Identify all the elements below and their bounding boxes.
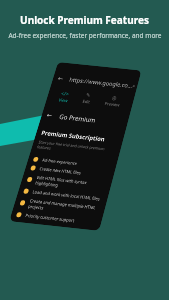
staticText: Ad-free experience, faster performance, … xyxy=(8,31,162,40)
staticText: https://www.google.co... xyxy=(68,75,133,89)
staticText: Preview xyxy=(104,100,121,108)
staticText: Load and work with local HTML files xyxy=(32,189,101,202)
staticText: ← xyxy=(46,111,54,119)
staticText: Edit HTML files with syntax highlighting xyxy=(35,174,107,193)
staticText: Priority customer support xyxy=(25,212,75,223)
staticText: Unlock Premium Features xyxy=(20,13,149,27)
staticText: ← xyxy=(57,75,65,82)
staticText: Create and manage multiple HTML projects xyxy=(27,198,100,216)
staticText: Edit xyxy=(82,98,91,104)
staticText: View xyxy=(58,97,69,103)
staticText: ✎ xyxy=(85,92,91,99)
staticText: Create new HTML files xyxy=(39,166,82,176)
staticText: </> xyxy=(60,90,70,98)
staticText: ◎ xyxy=(111,95,117,101)
staticText: Ad-free experience xyxy=(41,157,78,166)
staticText: Go Premium xyxy=(58,112,97,124)
staticText: Start your free trial and unlock premium… xyxy=(36,140,116,157)
staticText: Premium Subscription xyxy=(40,128,106,143)
